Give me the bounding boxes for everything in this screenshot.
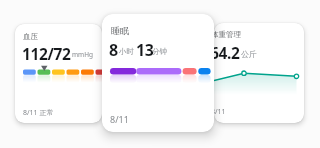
staticText: 13 <box>136 39 154 61</box>
button[interactable]: 睡眠 <box>102 14 214 132</box>
button[interactable]: 血压 <box>15 24 102 123</box>
staticText: 睡眠 <box>111 25 129 36</box>
staticText: 小时 <box>119 47 134 56</box>
staticText: 8 <box>109 39 118 61</box>
staticText: 8/11 正常 <box>23 108 54 118</box>
staticText: 64.2 <box>214 42 240 63</box>
staticText: mmHg <box>72 50 93 59</box>
staticText: 公斤 <box>241 49 257 59</box>
staticText: 8/11 <box>214 107 226 117</box>
staticText: 112/72 <box>22 43 71 64</box>
button[interactable]: 体重管理 <box>214 23 304 123</box>
staticText: 体重管理 <box>214 30 241 39</box>
staticText: 8/11 <box>110 113 129 125</box>
staticText: 分钟 <box>152 47 167 56</box>
staticText: 血压 <box>23 32 38 41</box>
